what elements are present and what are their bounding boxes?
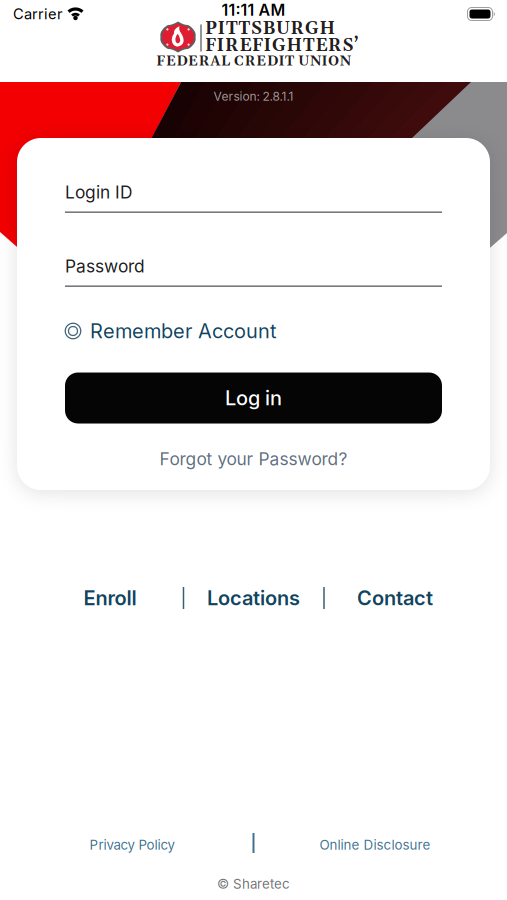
staticText: Enroll — [83, 586, 136, 610]
button[interactable]: Log in — [65, 372, 442, 423]
staticText: FEDERAL CREDIT UNION — [156, 53, 351, 70]
staticText: Online Disclosure — [319, 837, 430, 853]
staticText: Remember Account — [90, 319, 277, 343]
button[interactable]: Login ID — [65, 171, 442, 221]
button[interactable]: Privacy Policy — [89, 837, 174, 853]
staticText: Privacy Policy — [89, 837, 174, 853]
button[interactable]: Contact — [357, 586, 433, 610]
button[interactable]: Locations — [207, 586, 300, 610]
button[interactable]: Remember Account — [65, 315, 442, 347]
staticText: Contact — [357, 586, 433, 610]
staticText: Password — [65, 256, 145, 276]
staticText: Version: 2.8.1.1 — [213, 89, 293, 104]
button[interactable]: Forgot your Password? — [159, 449, 347, 469]
staticText: 11:11 AM — [221, 1, 285, 19]
staticText: FIREFIGHTERS’ — [205, 35, 359, 57]
staticText: © Sharetec — [217, 876, 290, 892]
staticText: Forgot your Password? — [159, 449, 347, 469]
staticText: PITTSBURGH — [205, 18, 335, 40]
staticText: Locations — [207, 586, 300, 610]
button[interactable]: Password — [65, 245, 442, 295]
staticText: Log in — [225, 386, 282, 410]
staticText: Carrier — [13, 5, 63, 23]
button[interactable]: Online Disclosure — [319, 837, 430, 853]
button[interactable]: Enroll — [83, 586, 136, 610]
staticText: Login ID — [65, 182, 133, 202]
